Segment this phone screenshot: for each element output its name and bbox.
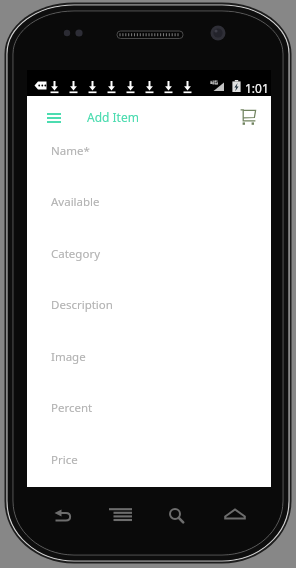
button[interactable]: Available xyxy=(27,176,271,228)
button[interactable]: Home xyxy=(219,503,251,529)
staticText: Add Item xyxy=(87,109,139,125)
button[interactable]: Recent apps xyxy=(105,503,136,529)
button[interactable]: Shopping cart xyxy=(235,103,261,129)
button[interactable]: Back xyxy=(48,503,80,529)
button[interactable]: Search xyxy=(163,503,193,529)
staticText: Image xyxy=(51,349,86,365)
button[interactable]: Percent xyxy=(27,382,271,434)
button[interactable]: Category xyxy=(27,228,271,280)
button[interactable]: Description xyxy=(27,279,271,331)
staticText: Category xyxy=(51,246,101,262)
button[interactable]: Open navigation menu xyxy=(40,105,68,133)
staticText: Name* xyxy=(51,143,90,159)
staticText: 1:01 xyxy=(245,80,269,96)
button[interactable]: Image xyxy=(27,331,271,383)
button[interactable]: Price xyxy=(27,434,271,486)
staticText: Price xyxy=(51,452,78,468)
staticText: Description xyxy=(51,297,113,313)
button[interactable]: Name* xyxy=(27,125,271,177)
staticText: Available xyxy=(51,194,100,210)
staticText: Percent xyxy=(51,400,93,416)
